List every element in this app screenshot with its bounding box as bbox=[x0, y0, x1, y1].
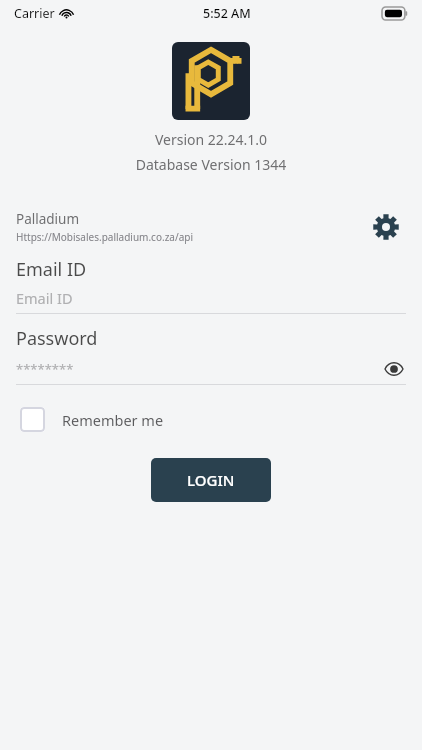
button[interactable]: ******** bbox=[16, 357, 406, 385]
button[interactable]: Remember me bbox=[16, 401, 168, 438]
staticText: Carrier bbox=[14, 5, 55, 22]
staticText: Database Version 1344 bbox=[0, 155, 422, 174]
staticText: LOGIN bbox=[187, 470, 235, 490]
button[interactable]: Show password bbox=[382, 357, 406, 381]
staticText: Version 22.24.1.0 bbox=[0, 130, 422, 149]
staticText: 5:52 AM bbox=[203, 5, 251, 22]
staticText: Remember me bbox=[62, 410, 164, 430]
staticText: Palladium bbox=[16, 210, 80, 228]
staticText: Email ID bbox=[16, 257, 406, 282]
staticText: Https://Mobisales.palladium.co.za/api bbox=[16, 230, 193, 244]
staticText: Password bbox=[16, 326, 406, 351]
staticText: Email ID bbox=[16, 288, 73, 308]
staticText: ******** bbox=[16, 360, 382, 378]
button[interactable]: LOGIN bbox=[151, 458, 271, 502]
button[interactable]: Email ID bbox=[16, 288, 406, 314]
button[interactable]: Settings bbox=[366, 207, 406, 247]
